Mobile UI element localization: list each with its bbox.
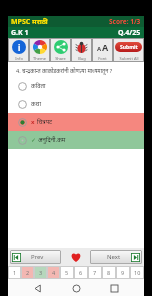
button[interactable]: Submit [115,42,142,52]
button[interactable]: Next [90,250,142,264]
staticText: Bug [78,56,86,61]
staticText: 4 [52,269,56,276]
button[interactable]: 1 [8,266,21,279]
button[interactable]: Home [68,280,84,296]
button[interactable]: 5 [60,266,74,279]
button[interactable]: Share [50,38,71,62]
staticText: ✓ [31,136,38,144]
staticText: 1 [13,269,17,276]
button[interactable]: 9 [116,266,130,279]
button[interactable]: Font [92,38,113,62]
staticText: A [102,41,109,53]
staticText: Next [107,253,121,261]
staticText: A [97,45,102,53]
staticText: x [31,118,37,126]
button[interactable]: Recents [106,280,122,296]
button[interactable]: 6 [74,266,88,279]
staticText: Submit [120,44,138,51]
staticText: 3 [39,269,43,276]
staticText: अनुदिनी.कम [38,136,66,144]
staticText: 9 [121,269,125,276]
staticText: Share [55,56,66,61]
staticText: Theme [33,56,46,61]
button[interactable]: Bug [71,38,92,62]
button[interactable]: Prev [10,250,61,264]
button[interactable]: Theme [29,38,50,62]
button[interactable]: कविता [8,77,144,95]
staticText: Info [15,56,23,61]
staticText: Submit All [119,56,139,61]
staticText: Q.4/25 [118,28,141,38]
button[interactable]: ✓ [8,131,144,149]
button[interactable]: 3 [34,266,47,279]
staticText: Prev [31,253,44,261]
button[interactable]: Info [8,38,29,62]
staticText: कथा [31,100,41,108]
staticText: चित्रपट [37,118,53,126]
staticText: कविता [31,82,46,90]
button[interactable]: x [8,113,144,131]
button[interactable]: 4 [47,266,60,279]
staticText: 2 [26,269,30,276]
button[interactable]: 7 [88,266,102,279]
staticText: Font [98,56,107,61]
button[interactable]: Submit All [113,38,144,62]
button[interactable]: 10 [130,266,144,279]
staticText: 6 [79,269,83,276]
staticText: 10 [134,269,141,276]
staticText: MPSC मराठी [11,17,49,27]
staticText: 4. चन्द्रकान्त काकोडकरांनी कोणत्या माध्य… [16,67,113,74]
button[interactable]: 2 [21,266,34,279]
button[interactable]: Back [30,280,46,296]
staticText: i [18,42,21,53]
staticText: Score: 1/3 [109,17,141,26]
staticText: 5 [65,269,69,276]
staticText: 7 [93,269,97,276]
staticText: 8 [107,269,111,276]
button[interactable]: कथा [8,95,144,113]
button[interactable]: 8 [102,266,116,279]
staticText: G.K 1 [11,28,29,38]
button[interactable]: Favourite [63,248,88,266]
